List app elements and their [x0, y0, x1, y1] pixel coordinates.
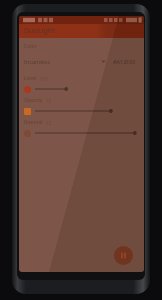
- staticText: 75: [46, 98, 52, 104]
- staticText: #A12F05: [113, 58, 139, 65]
- button[interactable]: Interval: [24, 119, 139, 138]
- button[interactable]: [24, 86, 31, 93]
- button[interactable]: Opacity: [24, 97, 139, 116]
- staticText: Level: [24, 75, 37, 82]
- staticText: Incandesc: [24, 58, 51, 65]
- button[interactable]: Level: [24, 75, 139, 94]
- staticText: DuoLight: [24, 26, 55, 36]
- button[interactable]: [24, 130, 31, 137]
- button[interactable]: DuoLight: [19, 24, 144, 38]
- staticText: 12: [46, 120, 52, 126]
- button[interactable]: Pause: [114, 246, 133, 265]
- button[interactable]: [24, 108, 31, 115]
- button[interactable]: Incandesc: [24, 56, 139, 67]
- staticText: Interval: [24, 119, 43, 126]
- staticText: Color: [24, 43, 37, 50]
- staticText: Opacity: [24, 97, 43, 104]
- staticText: 100: [40, 76, 48, 82]
